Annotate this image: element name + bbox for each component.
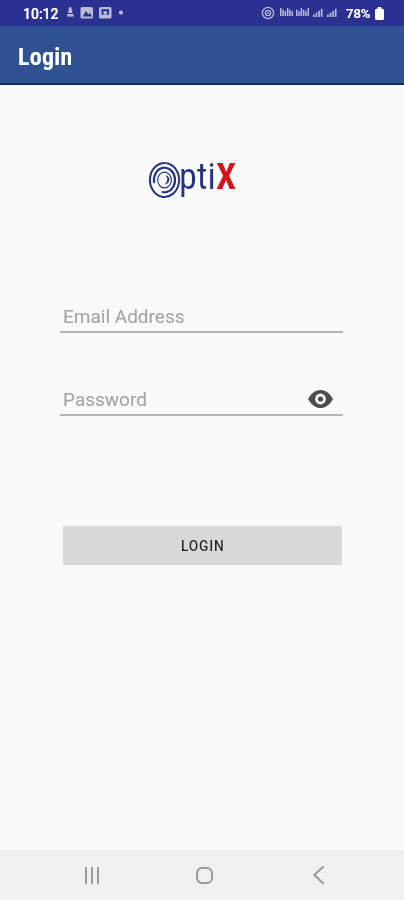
staticText: 78%	[346, 6, 371, 21]
button[interactable]: Recents	[68, 850, 115, 900]
staticText: LOGIN	[181, 538, 225, 554]
staticText: X	[216, 156, 237, 198]
staticText: 10:12	[23, 6, 59, 22]
staticText: Password	[63, 388, 147, 410]
button[interactable]: Show password	[306, 385, 334, 413]
staticText: Email Address	[63, 305, 185, 327]
button[interactable]: Password	[60, 376, 309, 416]
staticText: Login	[18, 43, 73, 71]
button[interactable]: Back	[295, 850, 342, 900]
button[interactable]: Home	[181, 850, 228, 900]
staticText: pti	[179, 156, 216, 198]
button[interactable]: LOGIN	[63, 526, 342, 565]
button[interactable]: Email Address	[60, 293, 343, 333]
